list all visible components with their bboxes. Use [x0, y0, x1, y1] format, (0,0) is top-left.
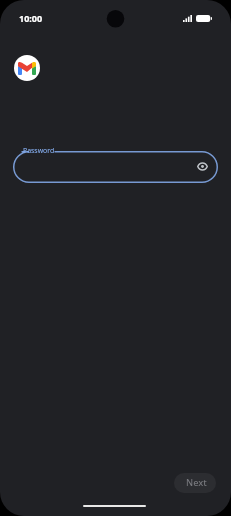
staticText: 10:00: [19, 12, 43, 24]
button[interactable]: Gmail: [14, 55, 40, 81]
button[interactable]: Password: [13, 151, 218, 183]
button[interactable]: Show password: [193, 157, 212, 176]
staticText: Next: [186, 476, 207, 489]
button[interactable]: Next: [174, 473, 216, 493]
staticText: Password: [23, 146, 55, 155]
